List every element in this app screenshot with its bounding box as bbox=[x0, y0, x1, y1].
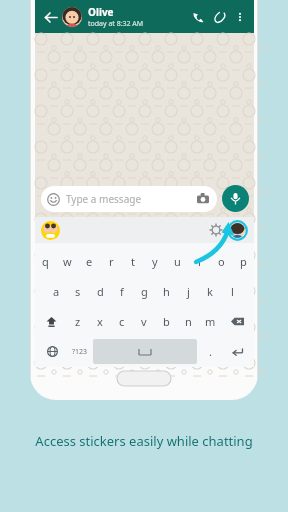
button[interactable]: d bbox=[89, 276, 111, 306]
staticText: o bbox=[218, 254, 225, 269]
button[interactable]: ?123 bbox=[66, 339, 93, 364]
button[interactable]: k bbox=[199, 276, 221, 306]
button[interactable]: Stickers bbox=[227, 220, 248, 241]
button[interactable]: n bbox=[177, 306, 199, 336]
staticText: z bbox=[75, 314, 81, 329]
button[interactable]: Backspace bbox=[221, 306, 254, 336]
staticText: x bbox=[97, 314, 103, 329]
staticText: v bbox=[141, 314, 147, 329]
button[interactable]: l bbox=[221, 276, 243, 306]
staticText: j bbox=[187, 284, 190, 299]
staticText: q bbox=[42, 254, 49, 269]
staticText: s bbox=[75, 284, 81, 299]
button[interactable]: f bbox=[111, 276, 133, 306]
button[interactable]: j bbox=[177, 276, 199, 306]
button[interactable]: Sticker settings bbox=[207, 221, 225, 239]
staticText: w bbox=[63, 254, 72, 269]
staticText: g bbox=[141, 284, 148, 299]
button[interactable]: v bbox=[133, 306, 155, 336]
staticText: k bbox=[207, 284, 213, 299]
staticText: Type a message bbox=[66, 192, 142, 206]
button[interactable]: Space bbox=[93, 339, 197, 364]
button[interactable]: Sticker pack bbox=[41, 221, 60, 240]
button[interactable]: Call bbox=[187, 6, 209, 28]
button[interactable]: Camera bbox=[195, 191, 211, 207]
button[interactable]: a bbox=[45, 276, 67, 306]
button[interactable]: Language bbox=[38, 339, 66, 364]
staticText: c bbox=[119, 314, 125, 329]
staticText: n bbox=[185, 314, 192, 329]
button[interactable]: Type a message bbox=[47, 186, 211, 212]
button[interactable]: Shift bbox=[35, 306, 67, 336]
staticText: e bbox=[86, 254, 93, 269]
button[interactable]: Back bbox=[40, 7, 60, 27]
button[interactable]: o bbox=[210, 247, 232, 276]
button[interactable]: z bbox=[67, 306, 89, 336]
staticText: p bbox=[240, 254, 247, 269]
button[interactable]: u bbox=[166, 247, 188, 276]
button[interactable]: g bbox=[133, 276, 155, 306]
staticText: f bbox=[120, 284, 124, 299]
staticText: i bbox=[198, 254, 201, 269]
staticText: t bbox=[131, 254, 135, 269]
button[interactable]: Voice message bbox=[222, 185, 249, 212]
button[interactable]: p bbox=[232, 247, 254, 276]
button[interactable]: e bbox=[78, 247, 100, 276]
staticText: Access stickers easily while chatting bbox=[0, 432, 288, 450]
button[interactable]: y bbox=[144, 247, 166, 276]
staticText: b bbox=[163, 314, 170, 329]
button[interactable]: s bbox=[67, 276, 89, 306]
staticText: y bbox=[152, 254, 158, 269]
staticText: ?123 bbox=[72, 347, 88, 357]
button[interactable]: x bbox=[89, 306, 111, 336]
staticText: m bbox=[205, 314, 216, 329]
staticText: r bbox=[109, 254, 114, 269]
staticText: today at 8:32 AM bbox=[88, 19, 144, 29]
staticText: a bbox=[53, 284, 60, 299]
staticText: u bbox=[174, 254, 181, 269]
button[interactable]: b bbox=[155, 306, 177, 336]
button[interactable]: h bbox=[155, 276, 177, 306]
button[interactable]: i bbox=[188, 247, 210, 276]
button[interactable]: c bbox=[111, 306, 133, 336]
button[interactable]: w bbox=[56, 247, 78, 276]
staticText: Olive bbox=[88, 5, 114, 19]
button[interactable]: . bbox=[197, 339, 224, 364]
button[interactable]: Attach bbox=[209, 6, 231, 28]
button[interactable]: Enter bbox=[224, 339, 251, 364]
staticText: h bbox=[163, 284, 170, 299]
button[interactable]: More options bbox=[231, 8, 249, 26]
button[interactable]: m bbox=[199, 306, 221, 336]
button[interactable]: q bbox=[35, 247, 56, 276]
staticText: l bbox=[231, 284, 234, 299]
staticText: . bbox=[209, 344, 212, 359]
staticText: d bbox=[97, 284, 104, 299]
button[interactable]: t bbox=[122, 247, 144, 276]
button[interactable]: r bbox=[100, 247, 122, 276]
